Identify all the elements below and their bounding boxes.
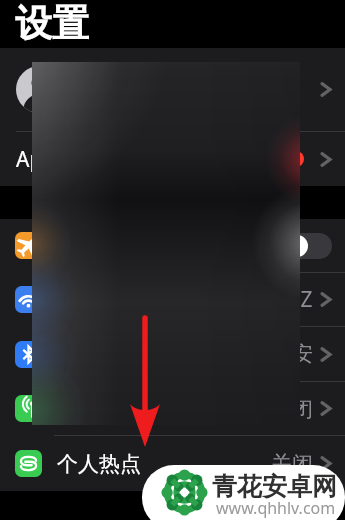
staticText: 飞行模式 [57,233,141,259]
button[interactable]: 蜂窝网络 [0,382,345,435]
staticText: 青花安卓网 [212,471,337,502]
button[interactable]: Apple One [0,132,345,186]
button[interactable]: 无线局域网 [0,273,345,326]
other: More [320,291,332,308]
staticText: www.qhhlv.com [216,497,336,519]
staticText: 蓝牙 [57,341,99,367]
button[interactable]: Apple ID [0,48,345,131]
other: More [320,151,332,168]
staticText: 设置 [15,0,89,41]
other: More [320,400,332,417]
button[interactable]: Airplane mode toggle [284,233,332,259]
other: More [320,455,332,472]
staticText: 安 [292,341,313,367]
button[interactable]: 飞行模式 [0,219,345,272]
staticText: Apple ID、iCloud、媒体与购买项目 [75,94,268,110]
staticText: 闭 [292,396,313,422]
staticText: Apple ID [75,69,144,92]
staticText: 关闭 [271,451,313,477]
staticText: Apple One [16,145,120,174]
button[interactable]: 个人热点 [0,436,345,491]
staticText: …Z [284,285,313,314]
staticText: 蜂窝网络 [57,396,141,422]
staticText: 个人热点 [57,451,141,477]
other: More [320,81,332,98]
staticText: 1 [293,152,299,166]
button[interactable]: 蓝牙 [0,327,345,381]
other: More [320,346,332,363]
staticText: 无线局域网 [57,287,162,313]
